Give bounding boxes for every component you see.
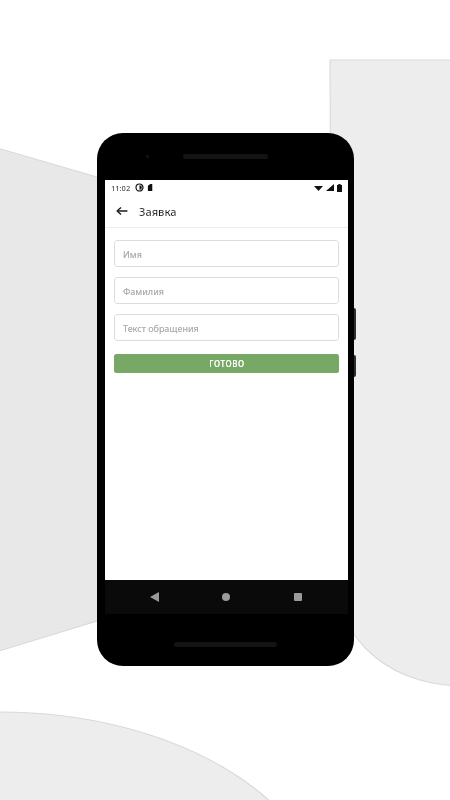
- button[interactable]: Текст обращения: [114, 314, 339, 341]
- staticText: 11:02: [111, 183, 131, 193]
- button[interactable]: Back: [119, 580, 190, 614]
- staticText: Заявка: [139, 204, 177, 219]
- staticText: Фамилия: [123, 285, 164, 297]
- button[interactable]: ГОТОВО: [114, 354, 339, 373]
- button[interactable]: Фамилия: [114, 277, 339, 304]
- button[interactable]: Recent apps: [262, 580, 334, 614]
- staticText: Имя: [123, 248, 142, 260]
- button[interactable]: Back: [112, 201, 132, 221]
- button[interactable]: Имя: [114, 240, 339, 267]
- button[interactable]: Home: [190, 580, 262, 614]
- staticText: Текст обращения: [123, 322, 199, 334]
- staticText: ГОТОВО: [209, 358, 245, 369]
